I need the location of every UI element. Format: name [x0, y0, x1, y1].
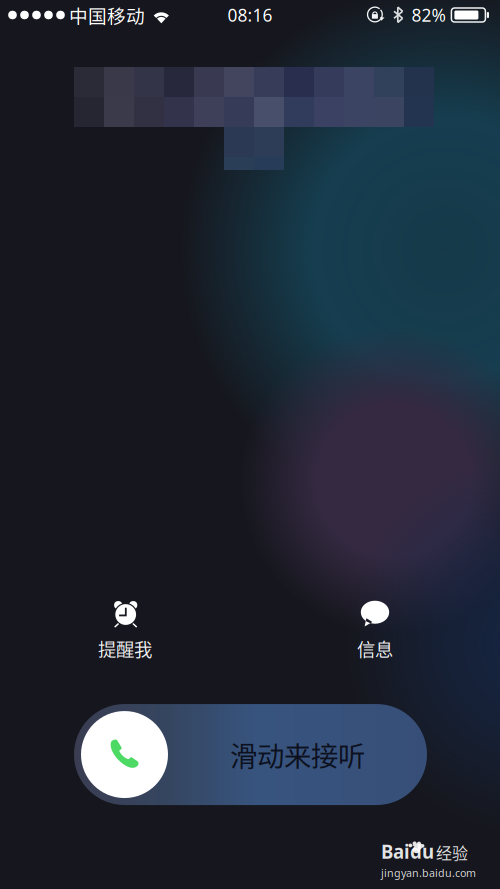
staticText: 信息 — [357, 635, 393, 662]
button[interactable]: 滑动来接听 — [74, 704, 427, 805]
staticText: 滑动来接听 — [230, 735, 365, 774]
staticText: 08:16 — [227, 3, 272, 26]
staticText: 82% — [411, 3, 445, 26]
staticText: 经验 — [436, 841, 468, 864]
staticText: 提醒我 — [98, 635, 152, 662]
staticText: 中国移动 — [69, 1, 145, 28]
button[interactable]: 信息 — [305, 602, 445, 659]
staticText: Baidu — [381, 839, 434, 864]
button[interactable]: 提醒我 — [55, 602, 195, 659]
staticText: jingyan.baidu.com — [381, 866, 476, 880]
